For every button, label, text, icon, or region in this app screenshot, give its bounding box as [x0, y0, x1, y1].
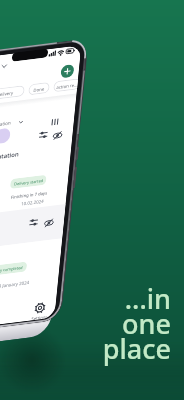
- staticText: ...in one place: [102, 280, 171, 367]
- staticText: Done: [30, 81, 47, 98]
- staticText: action re...: [53, 72, 80, 99]
- staticText: Finishing in 7 days: [8, 174, 51, 217]
- staticText: 10.02.2024: [18, 188, 47, 217]
- staticText: ...ng delivery: [0, 78, 16, 110]
- button[interactable]: Settings: [19, 290, 61, 332]
- staticText: 18 January 2024: [0, 264, 32, 304]
- button[interactable]: [54, 58, 80, 84]
- staticText: Fully completed: [0, 252, 25, 286]
- staticText: Delivery started: [12, 165, 46, 199]
- staticText: Presentation: [0, 133, 23, 180]
- staticText: Rotation: [0, 111, 14, 136]
- button[interactable]: action re...: [48, 68, 83, 103]
- button[interactable]: ...ng delivery: [0, 63, 30, 124]
- button[interactable]: Done: [23, 73, 55, 105]
- staticText: Settings: [30, 307, 50, 327]
